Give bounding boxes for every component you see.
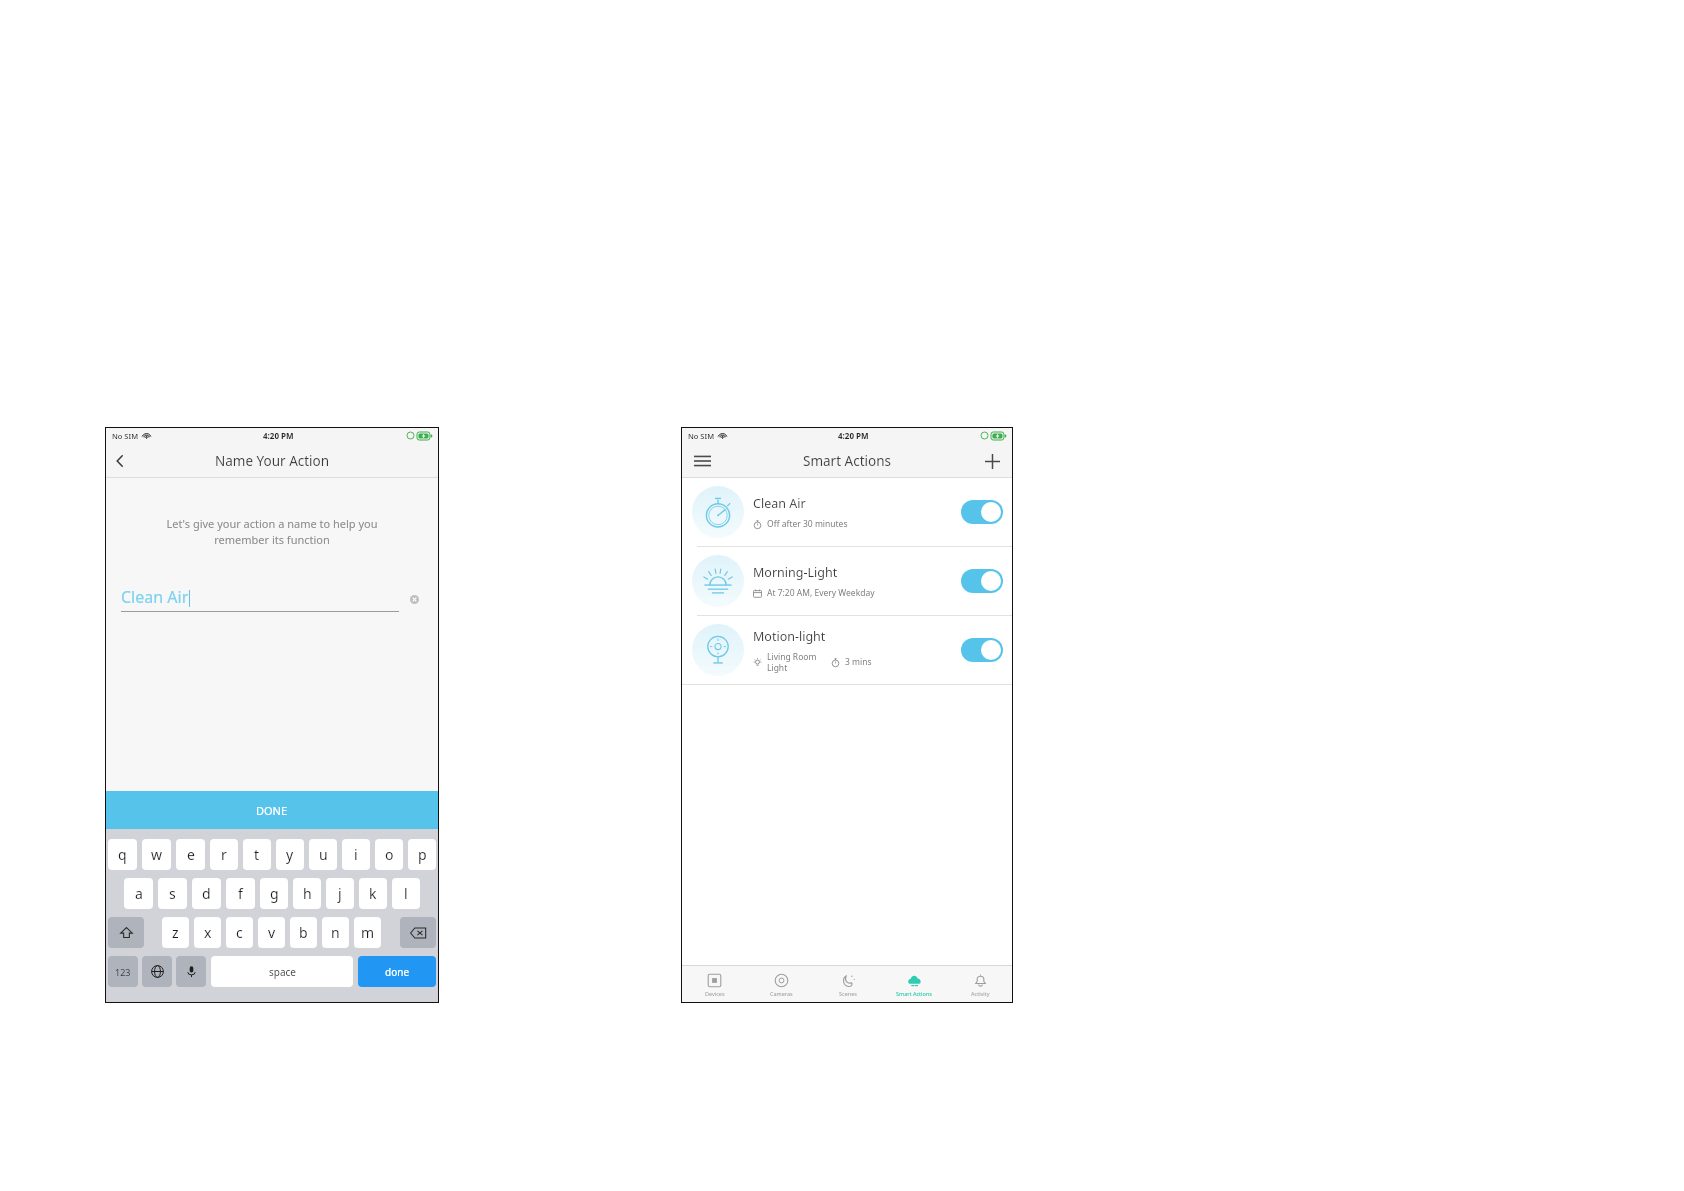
button[interactable]: Voice input: [176, 956, 206, 987]
button[interactable]: d: [192, 878, 221, 909]
staticText: k: [369, 884, 377, 903]
staticText: h: [303, 884, 312, 903]
button[interactable]: h: [293, 878, 321, 909]
staticText: Devices: [705, 990, 725, 997]
staticText: At 7:20 AM, Every Weekday: [767, 587, 875, 599]
staticText: Cameras: [770, 990, 793, 997]
staticText: No SIM: [112, 431, 139, 441]
staticText: f: [238, 884, 243, 903]
staticText: Off after 30 minutes: [767, 518, 848, 530]
staticText: Morning-Light: [753, 564, 838, 581]
staticText: t: [254, 845, 260, 864]
button[interactable]: Motion-light: [681, 616, 1013, 684]
staticText: v: [268, 923, 276, 942]
button[interactable]: c: [226, 917, 253, 948]
button[interactable]: a: [124, 878, 153, 909]
staticText: i: [354, 845, 358, 864]
staticText: Name Your Action: [215, 452, 330, 470]
staticText: n: [331, 923, 340, 942]
staticText: Smart Actions: [896, 990, 932, 997]
button[interactable]: Toggle on: [961, 569, 1003, 593]
button[interactable]: done: [358, 956, 436, 987]
staticText: space: [269, 965, 296, 979]
button[interactable]: Back: [105, 446, 135, 476]
button[interactable]: e: [176, 839, 205, 870]
button[interactable]: Devices: [681, 966, 748, 1003]
button[interactable]: Activity: [947, 966, 1013, 1003]
staticText: j: [338, 884, 342, 903]
staticText: x: [204, 923, 212, 942]
staticText: c: [236, 923, 243, 942]
staticText: Motion-light: [753, 628, 826, 645]
staticText: u: [319, 845, 328, 864]
staticText: b: [299, 923, 308, 942]
button[interactable]: Change keyboard: [142, 956, 172, 987]
staticText: Activity: [971, 990, 990, 997]
button[interactable]: l: [392, 878, 420, 909]
staticText: 4:20 PM: [263, 430, 294, 441]
staticText: y: [286, 845, 294, 864]
staticText: Living Room Light: [767, 651, 817, 673]
staticText: 4:20 PM: [838, 430, 869, 441]
button[interactable]: DONE: [105, 791, 439, 829]
button[interactable]: Cameras: [748, 966, 815, 1003]
button[interactable]: z: [162, 917, 189, 948]
staticText: e: [187, 845, 195, 864]
staticText: Smart Actions: [803, 452, 892, 470]
staticText: a: [135, 884, 143, 903]
staticText: g: [270, 884, 279, 903]
staticText: q: [118, 845, 127, 864]
button[interactable]: o: [375, 839, 403, 870]
button[interactable]: j: [326, 878, 354, 909]
staticText: Clean Air: [121, 586, 189, 608]
button[interactable]: Clear text: [405, 590, 423, 608]
staticText: 123: [115, 966, 131, 978]
button[interactable]: k: [359, 878, 387, 909]
staticText: Let's give your action a name to help yo…: [123, 516, 421, 548]
staticText: m: [361, 923, 375, 942]
staticText: d: [202, 884, 211, 903]
button[interactable]: Smart Actions: [881, 966, 947, 1003]
staticText: p: [418, 845, 427, 864]
button[interactable]: Shift: [108, 917, 144, 948]
button[interactable]: q: [108, 839, 137, 870]
staticText: z: [172, 923, 179, 942]
staticText: s: [169, 884, 176, 903]
staticText: o: [385, 845, 394, 864]
button[interactable]: Scenes: [815, 966, 881, 1003]
staticText: 3 mins: [845, 656, 872, 668]
button[interactable]: w: [142, 839, 171, 870]
button[interactable]: n: [322, 917, 349, 948]
button[interactable]: Toggle on: [961, 638, 1003, 662]
button[interactable]: x: [194, 917, 221, 948]
button[interactable]: g: [260, 878, 288, 909]
button[interactable]: p: [408, 839, 436, 870]
button[interactable]: b: [290, 917, 317, 948]
staticText: w: [151, 845, 163, 864]
button[interactable]: Add: [979, 448, 1005, 474]
button[interactable]: y: [276, 839, 304, 870]
button[interactable]: t: [243, 839, 271, 870]
button[interactable]: Clean Air: [681, 478, 1013, 546]
staticText: No SIM: [688, 431, 715, 441]
staticText: Clean Air: [753, 495, 806, 512]
staticText: done: [385, 965, 410, 979]
staticText: DONE: [256, 803, 288, 818]
button[interactable]: r: [210, 839, 238, 870]
staticText: Scenes: [839, 990, 857, 997]
staticText: r: [221, 845, 227, 864]
staticText: l: [404, 884, 408, 903]
button[interactable]: v: [258, 917, 285, 948]
button[interactable]: u: [309, 839, 337, 870]
button[interactable]: f: [226, 878, 255, 909]
button[interactable]: s: [158, 878, 187, 909]
button[interactable]: i: [342, 839, 370, 870]
button[interactable]: Menu: [689, 448, 715, 474]
button[interactable]: Morning-Light: [681, 547, 1013, 615]
button[interactable]: 123: [108, 956, 138, 987]
button[interactable]: space: [211, 956, 353, 987]
button[interactable]: Toggle on: [961, 500, 1003, 524]
button[interactable]: m: [354, 917, 381, 948]
button[interactable]: Backspace: [400, 917, 436, 948]
